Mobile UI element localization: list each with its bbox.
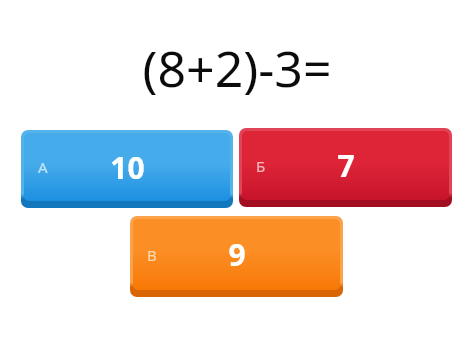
button[interactable]: Б xyxy=(239,128,452,207)
staticText: В xyxy=(147,245,157,265)
staticText: А xyxy=(38,157,48,177)
staticText: 10 xyxy=(110,147,145,188)
button[interactable]: В xyxy=(130,216,343,297)
staticText: Б xyxy=(256,156,266,176)
staticText: (8+2)-3= xyxy=(142,34,332,102)
button[interactable]: А xyxy=(21,130,233,208)
staticText: 9 xyxy=(228,234,246,275)
staticText: 7 xyxy=(337,145,355,186)
